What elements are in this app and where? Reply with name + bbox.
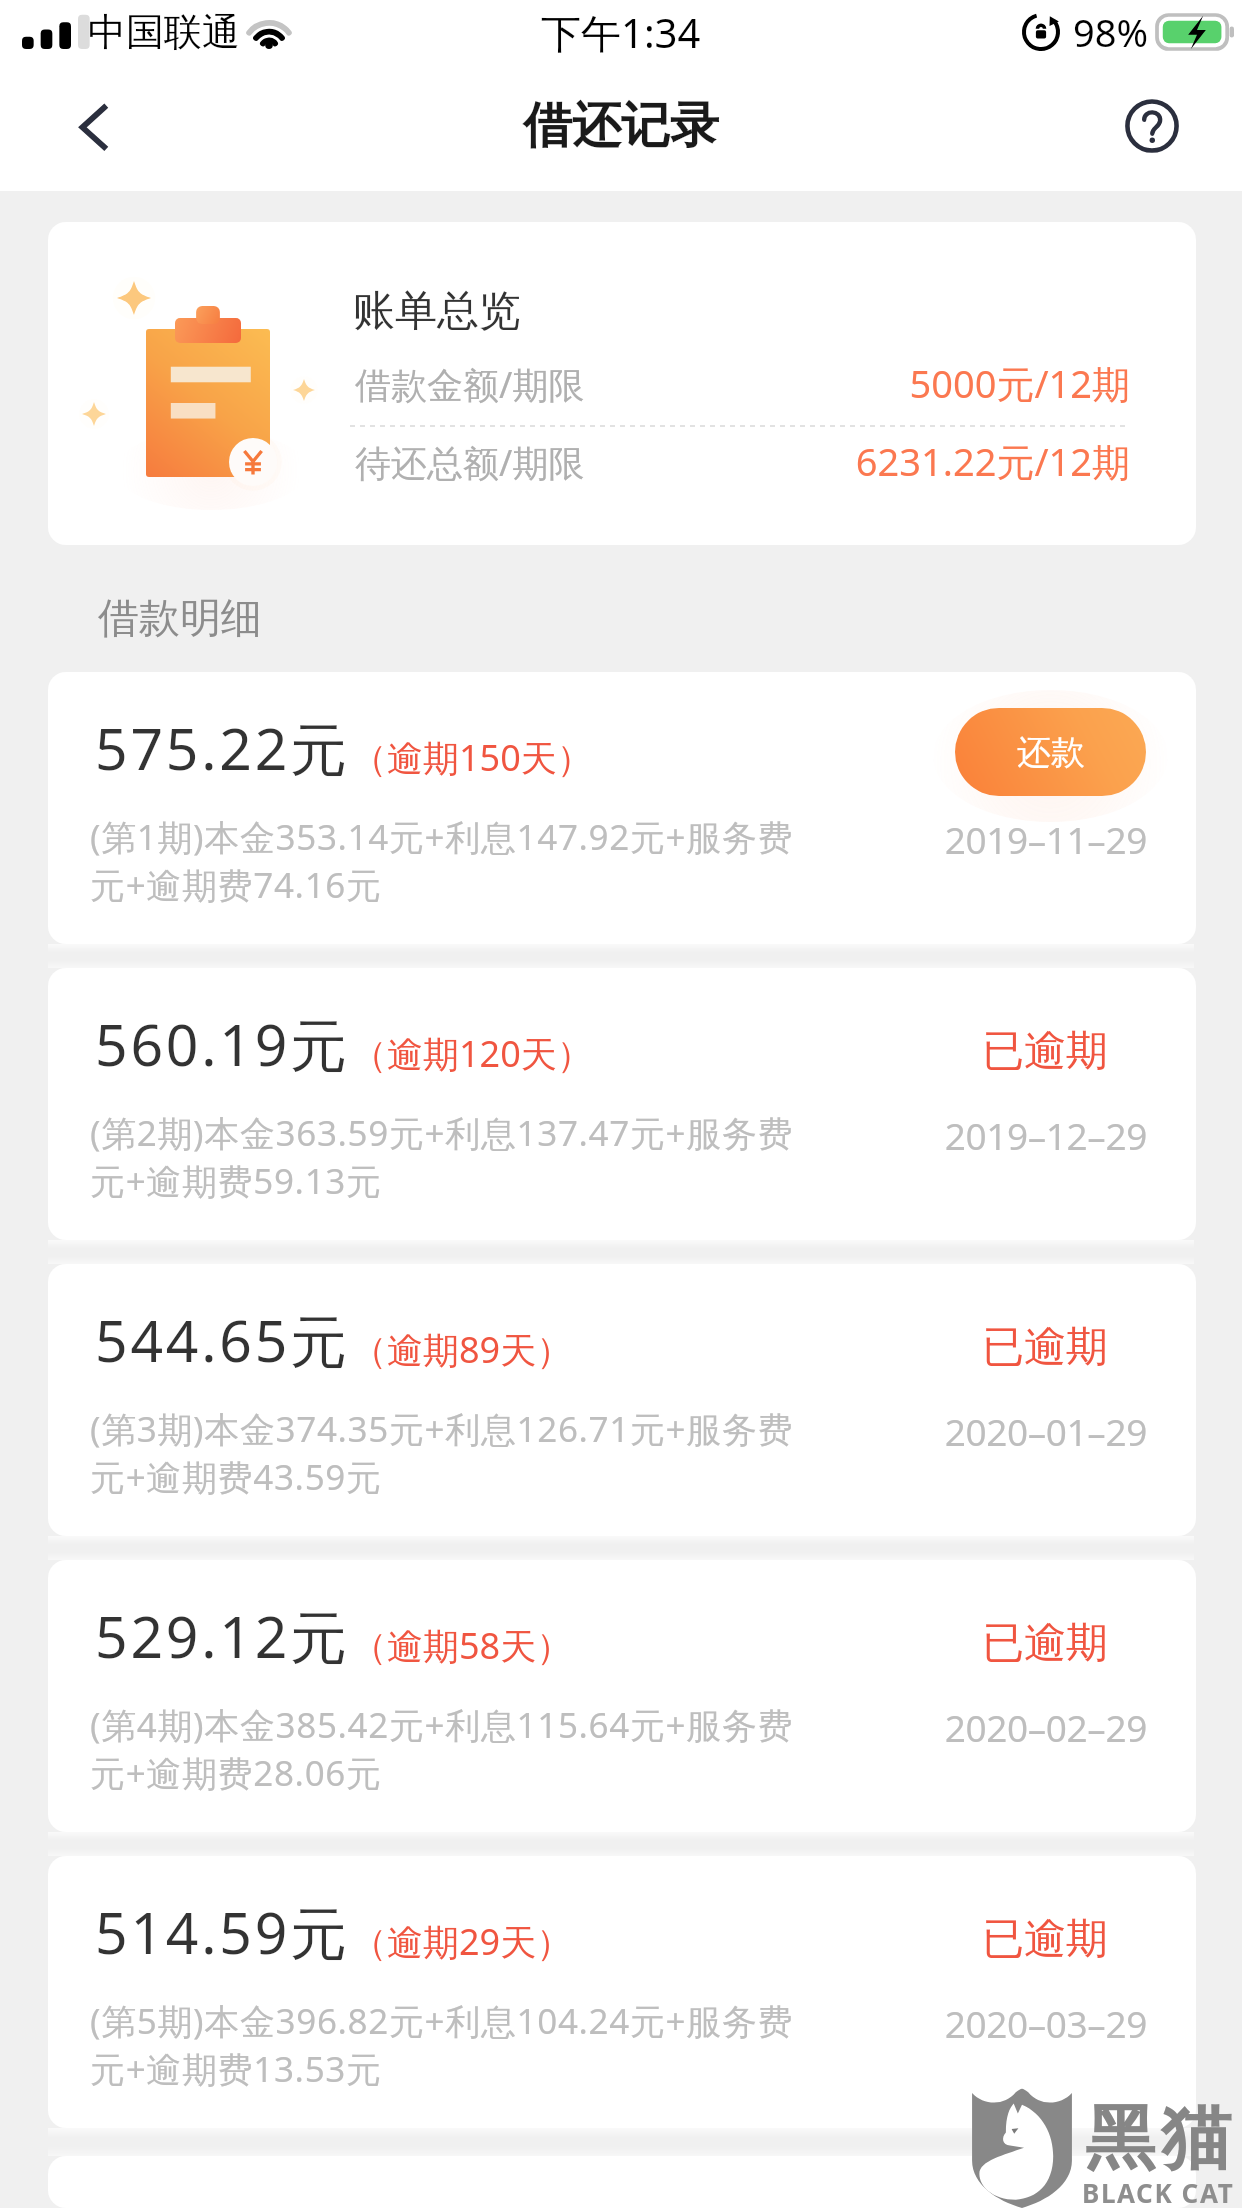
staticText: 元+逾期费74.16元 [90, 861, 382, 909]
staticText: （逾期58天） [351, 1621, 573, 1670]
staticText: 已逾期 [48, 1025, 1108, 1078]
staticText: （逾期120天） [351, 1029, 593, 1078]
staticText: 借款金额/期限 [355, 360, 585, 409]
button[interactable]: 529.12元 [48, 1560, 1196, 1832]
staticText: 529.12元 [95, 1597, 350, 1675]
staticText: 2020–02–29 [48, 1702, 1147, 1752]
staticText: 560.19元 [95, 1005, 350, 1083]
staticText: 还款 [1017, 731, 1085, 774]
button[interactable] [48, 2156, 1196, 2208]
button[interactable]: 575.22元 [48, 672, 1196, 944]
button[interactable]: 还款 [955, 708, 1146, 796]
button[interactable]: 544.65元 [48, 1264, 1196, 1536]
staticText: 下午1:34 [541, 5, 701, 60]
staticText: (第2期)本金363.59元+利息137.47元+服务费 [90, 1109, 794, 1157]
staticText: 账单总览 [353, 285, 521, 338]
staticText: 黑猫 [1082, 2095, 1234, 2183]
staticText: 借还记录 [523, 95, 719, 157]
staticText: (第4期)本金385.42元+利息115.64元+服务费 [90, 1701, 794, 1749]
staticText: 待还总额/期限 [355, 438, 585, 487]
staticText: 已逾期 [48, 1913, 1108, 1966]
staticText: （逾期29天） [351, 1917, 573, 1966]
staticText: （逾期150天） [351, 733, 593, 782]
staticText: 中国联通 [88, 8, 240, 56]
staticText: 元+逾期费59.13元 [90, 1157, 382, 1205]
staticText: 借款明细 [98, 593, 262, 645]
button[interactable]: Help [1125, 99, 1179, 153]
staticText: 2019–12–29 [48, 1110, 1147, 1160]
button[interactable]: 560.19元 [48, 968, 1196, 1240]
staticText: 2020–01–29 [48, 1406, 1147, 1456]
staticText: 2019–11–29 [48, 814, 1147, 864]
staticText: （逾期89天） [351, 1325, 573, 1374]
button[interactable]: 514.59元 [48, 1856, 1196, 2128]
staticText: BLACK CAT [1082, 2175, 1235, 2205]
staticText: 98% [1073, 6, 1149, 58]
staticText: 元+逾期费28.06元 [90, 1749, 382, 1797]
staticText: 575.22元 [95, 709, 350, 787]
staticText: 已逾期 [48, 1321, 1108, 1374]
staticText: 514.59元 [95, 1893, 350, 1971]
button[interactable]: Back [62, 94, 130, 162]
staticText: 元+逾期费43.59元 [90, 1453, 382, 1501]
staticText: 5000元/12期 [350, 357, 1130, 409]
staticText: (第1期)本金353.14元+利息147.92元+服务费 [90, 813, 794, 861]
staticText: 已逾期 [48, 1617, 1108, 1670]
staticText: 2020–03–29 [48, 1998, 1147, 2048]
staticText: (第5期)本金396.82元+利息104.24元+服务费 [90, 1997, 794, 2045]
staticText: 544.65元 [95, 1301, 350, 1379]
button[interactable]: 账单总览 [48, 222, 1196, 545]
staticText: (第3期)本金374.35元+利息126.71元+服务费 [90, 1405, 794, 1453]
staticText: 元+逾期费13.53元 [90, 2045, 382, 2093]
staticText: 6231.22元/12期 [350, 435, 1130, 487]
